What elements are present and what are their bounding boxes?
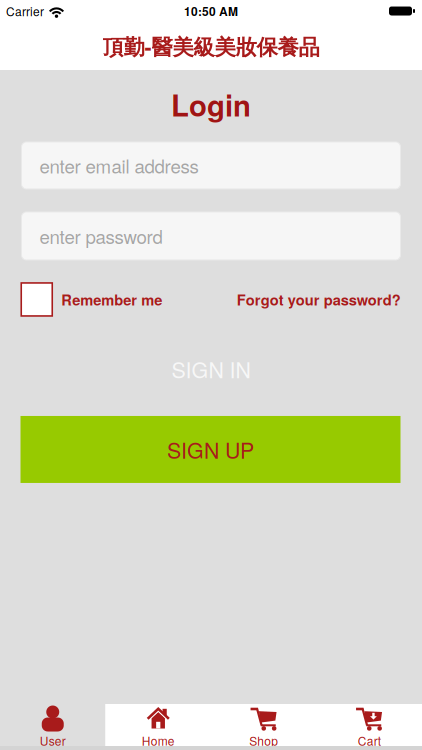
staticText: User <box>40 732 66 749</box>
button[interactable]: Remember me <box>21 283 162 316</box>
staticText: Login <box>171 84 251 125</box>
button[interactable]: User <box>0 704 105 746</box>
staticText: Carrier <box>6 3 44 19</box>
button[interactable]: Shop <box>211 704 316 746</box>
staticText: Cart <box>358 732 381 749</box>
button[interactable]: Cart <box>316 704 422 746</box>
staticText: Shop <box>249 732 278 749</box>
button[interactable]: Forgot your password? <box>237 289 401 310</box>
button[interactable]: SIGN IN <box>0 356 422 382</box>
staticText: SIGN IN <box>171 354 250 384</box>
staticText: Forgot your password? <box>237 289 401 310</box>
button[interactable]: SIGN UP <box>20 416 400 483</box>
staticText: 10:50 AM <box>184 3 238 19</box>
button[interactable]: enter password <box>21 212 400 260</box>
staticText: 頂勤-醫美級美妝保養品 <box>102 31 319 61</box>
staticText: SIGN UP <box>167 435 254 464</box>
button[interactable]: Home <box>105 704 211 746</box>
button[interactable]: enter email address <box>21 142 400 189</box>
staticText: enter password <box>39 223 162 249</box>
staticText: Remember me <box>61 289 162 310</box>
staticText: enter email address <box>39 152 198 178</box>
staticText: Home <box>142 732 175 749</box>
